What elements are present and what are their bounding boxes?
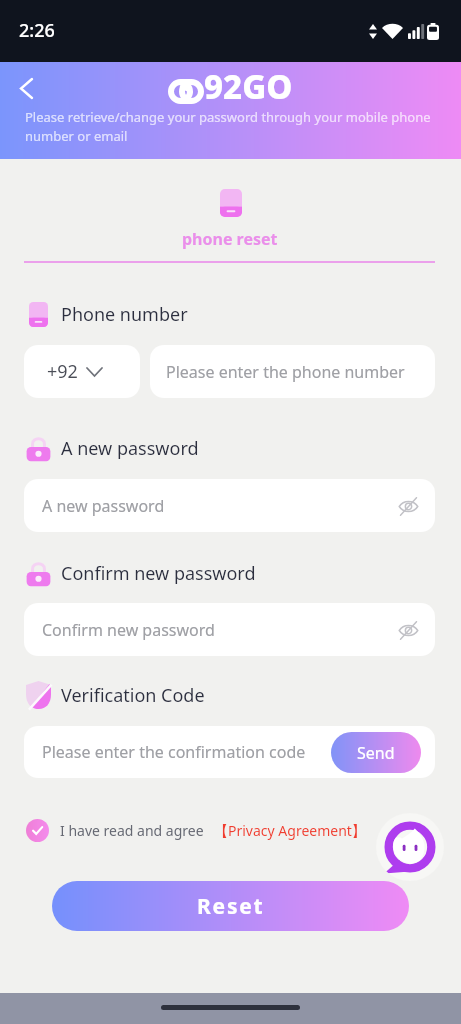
staticText: Please enter the confirmation code — [42, 741, 306, 763]
button[interactable]: Please enter the phone number — [150, 345, 435, 398]
staticText: Confirm new password — [42, 619, 215, 641]
staticText: Please retrieve/change your password thr… — [25, 110, 445, 145]
staticText: A new password — [42, 495, 165, 517]
staticText: Reset — [197, 892, 265, 921]
staticText: Send — [357, 742, 395, 764]
button[interactable]: +92 — [24, 345, 140, 398]
button[interactable]: phone reset — [24, 226, 435, 252]
staticText: Please enter the phone number — [166, 361, 405, 383]
staticText: A new password — [61, 436, 199, 461]
staticText: 92GO — [204, 64, 293, 109]
button[interactable]: Confirm new password — [24, 603, 435, 656]
staticText: Verification Code — [61, 683, 205, 708]
staticText: I have read and agree — [60, 821, 204, 840]
button[interactable]: Send — [331, 732, 421, 773]
button[interactable]: Reset — [52, 881, 409, 931]
button[interactable]: Show password — [395, 617, 421, 643]
staticText: phone reset — [182, 228, 278, 250]
button[interactable]: Customer service chat — [376, 813, 444, 881]
button[interactable]: I have read and agree — [26, 818, 366, 842]
button[interactable]: Back — [8, 70, 44, 106]
staticText: +92 — [47, 359, 78, 384]
staticText: Confirm new password — [61, 561, 256, 586]
button[interactable]: A new password — [24, 479, 435, 532]
staticText: 【Privacy Agreement】 — [214, 821, 366, 840]
staticText: 2:26 — [19, 18, 55, 43]
button[interactable]: Show password — [395, 493, 421, 519]
staticText: Phone number — [61, 302, 188, 327]
